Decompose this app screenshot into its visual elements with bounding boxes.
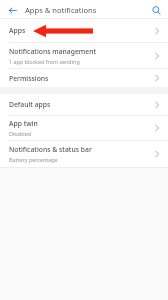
staticText: 1 app blocked from sending bbox=[9, 58, 80, 65]
staticText: Apps & notifications bbox=[25, 5, 97, 15]
button[interactable]: Search bbox=[149, 3, 163, 17]
staticText: App twin bbox=[9, 119, 38, 128]
staticText: Notifications & status bar bbox=[9, 145, 92, 154]
button[interactable]: App twin bbox=[0, 116, 168, 140]
staticText: Notifications management bbox=[9, 47, 97, 56]
staticText: Disabled bbox=[9, 130, 31, 137]
button[interactable]: Default apps bbox=[0, 94, 168, 115]
staticText: Apps bbox=[9, 26, 26, 35]
staticText: Default apps bbox=[9, 100, 51, 109]
button[interactable]: Notifications management bbox=[0, 43, 168, 68]
button[interactable]: Apps bbox=[0, 19, 168, 42]
staticText: Permissions bbox=[9, 74, 49, 83]
button[interactable]: Notifications & status bar bbox=[0, 141, 168, 167]
button[interactable]: Back bbox=[5, 3, 19, 17]
button[interactable]: Permissions bbox=[0, 69, 168, 87]
staticText: Battery percentage bbox=[9, 156, 58, 163]
